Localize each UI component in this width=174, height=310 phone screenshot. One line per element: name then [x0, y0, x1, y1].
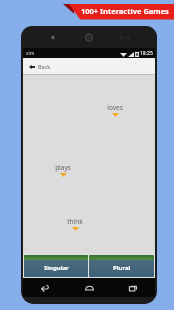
- button[interactable]: Back: [23, 278, 67, 297]
- staticText: Plural: [113, 264, 131, 272]
- button[interactable]: Back: [26, 60, 54, 73]
- button[interactable]: think: [67, 217, 83, 231]
- staticText: 18:25: [140, 50, 153, 57]
- button[interactable]: Recent apps: [111, 278, 155, 297]
- button[interactable]: plays: [55, 163, 71, 177]
- staticText: Back: [38, 63, 51, 70]
- button[interactable]: Home: [67, 278, 111, 297]
- staticText: plays: [55, 163, 71, 172]
- staticText: loves: [107, 103, 123, 112]
- staticText: think: [67, 217, 83, 226]
- button[interactable]: Singular: [24, 255, 88, 277]
- staticText: sim: [26, 50, 35, 57]
- staticText: Singular: [44, 264, 69, 272]
- button[interactable]: Plural: [89, 255, 154, 277]
- staticText: 100+ Interactive Games: [81, 6, 169, 16]
- button[interactable]: loves: [107, 103, 123, 117]
